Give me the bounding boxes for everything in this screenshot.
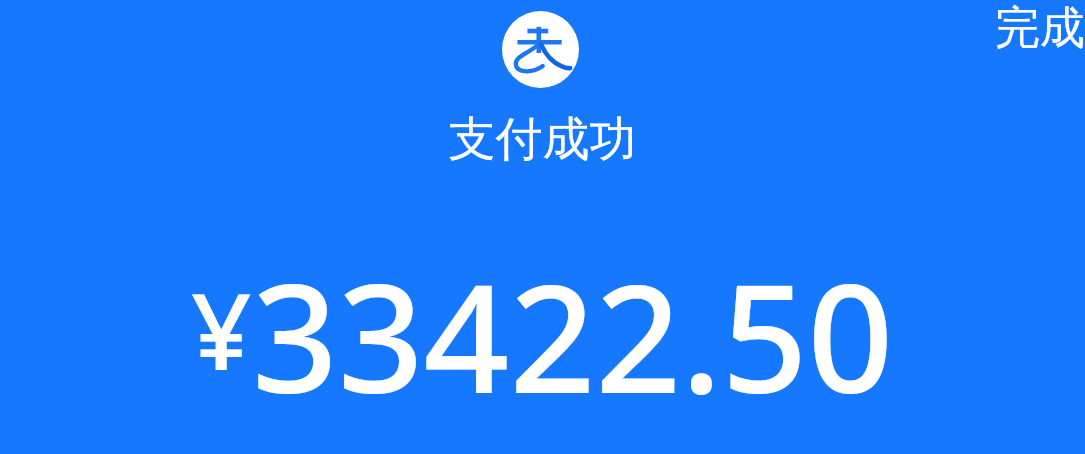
button[interactable]: 完成 <box>975 0 1085 67</box>
staticText: 支付成功 <box>0 110 1085 454</box>
other: Alipay <box>502 11 579 88</box>
staticText: 33422.50 <box>252 233 894 437</box>
staticText: 完成 <box>995 0 1085 57</box>
staticText: ¥ <box>191 257 252 401</box>
